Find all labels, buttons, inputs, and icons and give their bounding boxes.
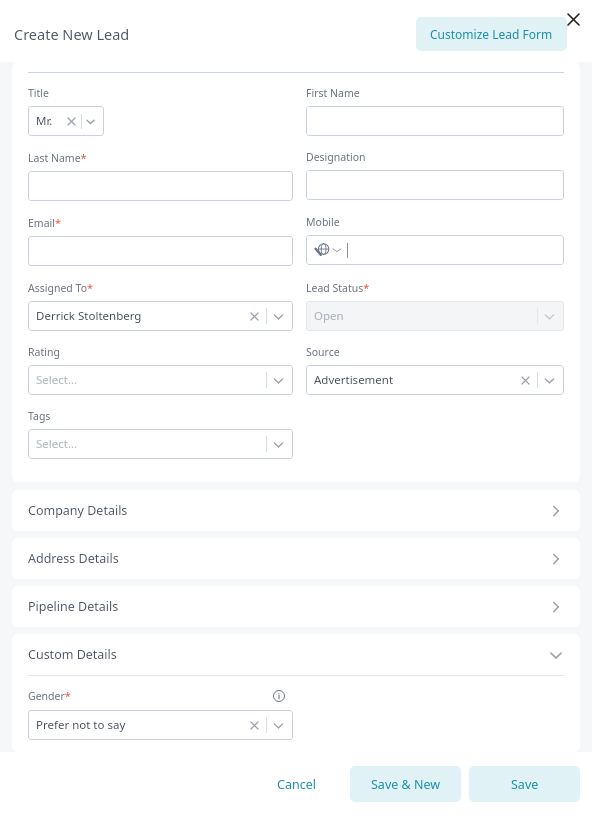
staticText: Last Name* xyxy=(28,150,87,165)
other: Expand Pipeline Details xyxy=(548,599,564,615)
button[interactable]: Mr. xyxy=(28,106,104,136)
button[interactable]: Information about Gender xyxy=(273,690,285,702)
button[interactable]: Close xyxy=(560,6,586,32)
button[interactable]: Cancel xyxy=(261,768,332,801)
staticText: Tags xyxy=(28,409,51,423)
staticText: Cancel xyxy=(277,776,316,793)
staticText: First Name xyxy=(306,86,360,100)
staticText: Prefer not to say xyxy=(36,717,249,733)
button[interactable]: Derrick Stoltenberg xyxy=(28,301,293,331)
staticText: Assigned To* xyxy=(28,280,94,295)
button[interactable] xyxy=(306,170,564,200)
staticText: Company Details xyxy=(28,502,548,519)
button[interactable]: Save & New xyxy=(350,766,461,802)
staticText: Address Details xyxy=(28,550,548,567)
button[interactable] xyxy=(306,106,564,136)
button[interactable]: Company Details xyxy=(12,490,580,531)
button[interactable] xyxy=(28,236,293,266)
staticText: Save xyxy=(511,776,539,793)
button[interactable]: Prefer not to say xyxy=(28,710,293,740)
staticText: Rating xyxy=(28,345,60,359)
other: Expand Address Details xyxy=(548,551,564,567)
button[interactable]: Custom Details xyxy=(12,634,580,675)
other: Expand Company Details xyxy=(548,503,564,519)
staticText: Source xyxy=(306,345,340,359)
staticText: Designation xyxy=(306,150,366,164)
button[interactable]: Customize Lead Form xyxy=(416,17,567,51)
button[interactable]: Address Details xyxy=(12,538,580,579)
staticText: Title xyxy=(28,86,49,100)
staticText: Custom Details xyxy=(28,646,548,663)
button[interactable]: Advertisement xyxy=(306,365,564,395)
staticText: Mr. xyxy=(36,113,66,129)
staticText: Gender* xyxy=(28,688,71,703)
staticText: Create New Lead xyxy=(14,24,130,44)
staticText: Open xyxy=(314,308,537,324)
staticText: Derrick Stoltenberg xyxy=(36,308,249,324)
staticText: Email* xyxy=(28,215,62,230)
button[interactable]: Open xyxy=(306,301,564,331)
staticText: Customize Lead Form xyxy=(430,26,553,42)
button[interactable]: Save xyxy=(469,766,580,802)
staticText: Mobile xyxy=(306,215,340,229)
button[interactable]: Pipeline Details xyxy=(12,586,580,627)
button[interactable]: Select... xyxy=(28,365,293,395)
staticText: Advertisement xyxy=(314,372,520,388)
staticText: Save & New xyxy=(371,776,441,793)
staticText: Lead Status* xyxy=(306,280,370,295)
button[interactable] xyxy=(28,171,293,201)
button[interactable]: Select... xyxy=(28,429,293,459)
staticText: Pipeline Details xyxy=(28,598,548,615)
staticText: Select... xyxy=(36,372,266,388)
button[interactable] xyxy=(306,235,564,265)
staticText: Select... xyxy=(36,436,266,452)
